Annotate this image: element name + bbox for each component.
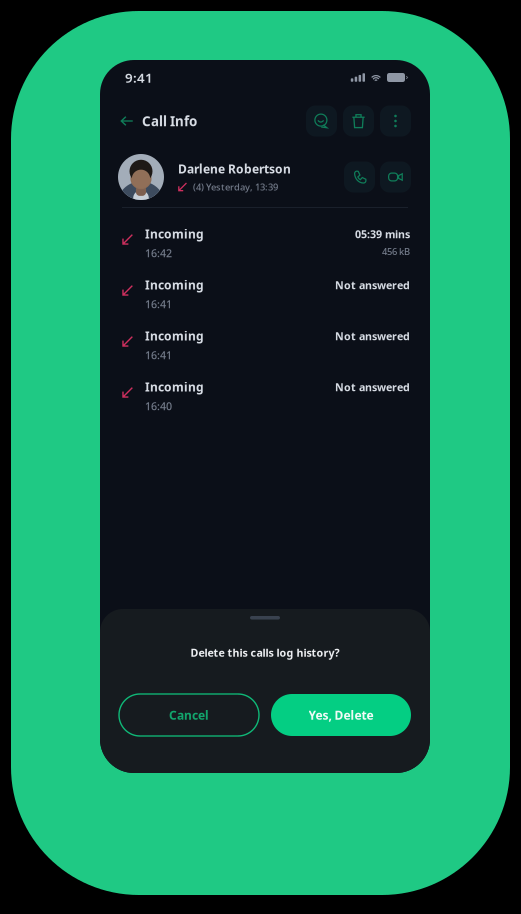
- button[interactable]: Video call: [380, 161, 411, 192]
- button[interactable]: Incoming: [100, 361, 430, 412]
- staticText: Call Info: [142, 112, 197, 130]
- staticText: Delete this calls log history?: [190, 645, 339, 660]
- staticText: 9:41: [125, 69, 153, 86]
- button[interactable]: Incoming: [100, 259, 430, 310]
- button[interactable]: More options: [380, 105, 411, 136]
- staticText: Incoming: [145, 328, 204, 344]
- staticText: Darlene Robertson: [178, 161, 291, 177]
- staticText: Incoming: [145, 379, 204, 395]
- staticText: 16:40: [145, 399, 172, 413]
- button[interactable]: Delete: [343, 105, 374, 136]
- button[interactable]: Cancel: [119, 694, 259, 736]
- button[interactable]: Yes, Delete: [271, 694, 411, 736]
- button[interactable]: Incoming: [100, 208, 430, 259]
- staticText: Incoming: [145, 277, 204, 293]
- staticText: 16:41: [145, 348, 172, 362]
- staticText: Yes, Delete: [308, 707, 373, 723]
- staticText: Incoming: [145, 226, 204, 242]
- staticText: (4) Yesterday, 13:39: [193, 181, 278, 193]
- button[interactable]: Message: [306, 105, 337, 136]
- staticText: Not answered: [335, 380, 410, 394]
- staticText: Cancel: [169, 707, 209, 723]
- staticText: Not answered: [335, 278, 410, 292]
- button[interactable]: Incoming: [100, 310, 430, 361]
- staticText: 16:41: [145, 297, 172, 311]
- staticText: 456 kB: [382, 245, 410, 258]
- staticText: 05:39 mins: [355, 227, 410, 241]
- button[interactable]: Call Info: [120, 105, 205, 137]
- staticText: 16:42: [145, 246, 172, 260]
- staticText: Not answered: [335, 329, 410, 343]
- button[interactable]: Call: [344, 161, 375, 192]
